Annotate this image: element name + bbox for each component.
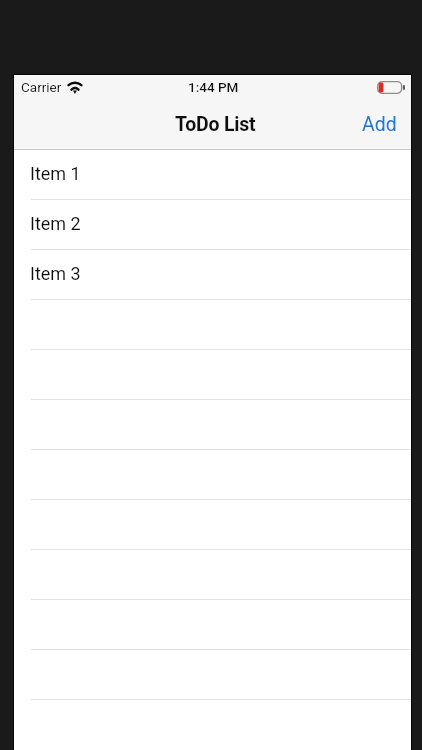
staticText: Item 1 (30, 163, 81, 184)
button[interactable]: Item 3 (14, 250, 411, 300)
button[interactable] (14, 550, 411, 600)
staticText: ToDo List (175, 113, 256, 136)
button[interactable] (14, 650, 411, 700)
other: Battery low (377, 81, 405, 94)
staticText: Carrier (21, 79, 62, 95)
staticText: Item 3 (30, 263, 81, 284)
button[interactable] (14, 350, 411, 400)
button[interactable] (14, 600, 411, 650)
staticText: 1:44 PM (188, 79, 239, 95)
button[interactable]: Item 1 (14, 150, 411, 200)
other: Wi-Fi signal (66, 80, 84, 95)
button[interactable] (14, 400, 411, 450)
button[interactable] (14, 500, 411, 550)
button[interactable] (14, 300, 411, 350)
staticText: Add (362, 113, 397, 136)
staticText: Item 2 (30, 213, 81, 234)
button[interactable]: Item 2 (14, 200, 411, 250)
button[interactable] (14, 450, 411, 500)
button[interactable]: Add (344, 100, 411, 145)
